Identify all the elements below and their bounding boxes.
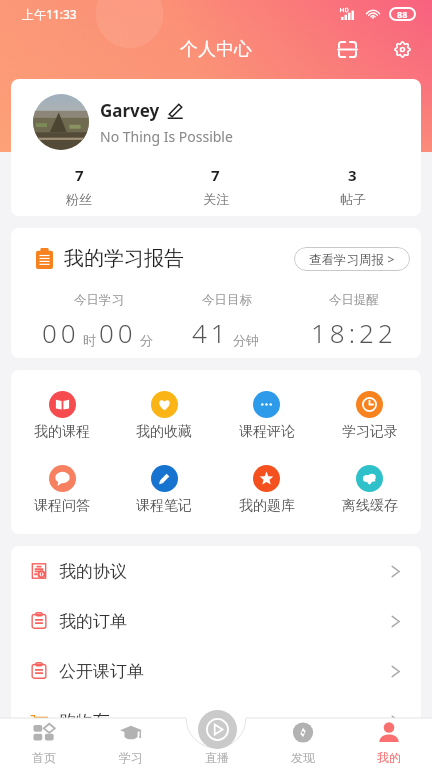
staticText: 00 <box>42 315 80 350</box>
staticText: 购物车 <box>59 711 110 732</box>
staticText: 首页 <box>32 750 56 765</box>
staticText: 时 <box>83 332 96 348</box>
button[interactable]: 学习记录 <box>318 391 421 441</box>
button[interactable]: 我的题库 <box>215 465 318 515</box>
staticText: 我的协议 <box>59 561 127 582</box>
staticText: 41 <box>192 315 230 350</box>
button[interactable]: 今日提醒 <box>290 292 417 350</box>
button[interactable]: 离线缓存 <box>318 465 421 515</box>
staticText: 00 <box>99 315 137 350</box>
staticText: 今日学习 <box>74 292 124 308</box>
staticText: 我的学习报告 <box>64 246 184 271</box>
staticText: 离线缓存 <box>342 497 398 515</box>
staticText: 我的 <box>377 750 401 765</box>
button[interactable]: 7 <box>147 165 284 207</box>
staticText: 3 <box>348 165 357 185</box>
button[interactable]: 课程问答 <box>11 465 113 515</box>
button[interactable]: 我的订单 <box>11 596 421 646</box>
staticText: 我的课程 <box>34 423 90 441</box>
button[interactable]: 购物车 <box>11 696 421 746</box>
staticText: 88 <box>397 8 408 20</box>
button[interactable]: 今日学习 <box>35 292 163 350</box>
button[interactable]: 课程评论 <box>215 391 318 441</box>
button[interactable]: 课程笔记 <box>113 465 215 515</box>
button[interactable]: 我的 <box>346 718 432 768</box>
staticText: 分 <box>140 332 153 348</box>
staticText: 课程问答 <box>34 497 90 515</box>
staticText: 7 <box>75 165 84 185</box>
staticText: 7 <box>211 165 220 185</box>
button[interactable]: 学习 <box>87 718 174 768</box>
staticText: 18:22 <box>311 315 397 350</box>
button[interactable]: 首页 <box>0 718 87 768</box>
staticText: 我的题库 <box>239 497 295 515</box>
staticText: Garvey <box>100 99 160 122</box>
staticText: 上午11:33 <box>22 6 77 22</box>
staticText: 关注 <box>203 191 229 207</box>
staticText: 学习记录 <box>342 423 398 441</box>
staticText: 我的订单 <box>59 611 127 632</box>
button[interactable]: 我的课程 <box>11 391 113 441</box>
staticText: 个人中心 <box>180 38 252 61</box>
staticText: 帖子 <box>340 191 366 207</box>
staticText: 学习 <box>119 750 143 765</box>
button[interactable]: 3 <box>284 165 421 207</box>
staticText: 直播 <box>205 750 229 765</box>
button[interactable]: 直播 <box>174 718 260 768</box>
staticText: 分钟 <box>233 332 259 348</box>
staticText: 课程笔记 <box>136 497 192 515</box>
staticText: 公开课订单 <box>59 661 144 682</box>
staticText: 粉丝 <box>66 191 92 207</box>
staticText: 查看学习周报 > <box>309 251 395 268</box>
button[interactable]: 发现 <box>260 718 346 768</box>
staticText: 我的收藏 <box>136 423 192 441</box>
staticText: 今日目标 <box>202 292 252 308</box>
staticText: No Thing Is Possible <box>100 127 233 146</box>
button[interactable]: Edit profile <box>167 103 183 119</box>
staticText: 发现 <box>291 750 315 765</box>
button[interactable]: 我的协议 <box>11 546 421 596</box>
staticText: 课程评论 <box>239 423 295 441</box>
button[interactable]: Settings <box>385 32 419 66</box>
button[interactable]: 公开课订单 <box>11 646 421 696</box>
staticText: 今日提醒 <box>329 292 379 308</box>
button[interactable]: 今日目标 <box>163 292 290 350</box>
button[interactable]: Scan QR code <box>330 32 364 66</box>
button[interactable]: 7 <box>11 165 147 207</box>
button[interactable]: 查看学习周报 > <box>294 247 410 271</box>
button[interactable]: 我的收藏 <box>113 391 215 441</box>
